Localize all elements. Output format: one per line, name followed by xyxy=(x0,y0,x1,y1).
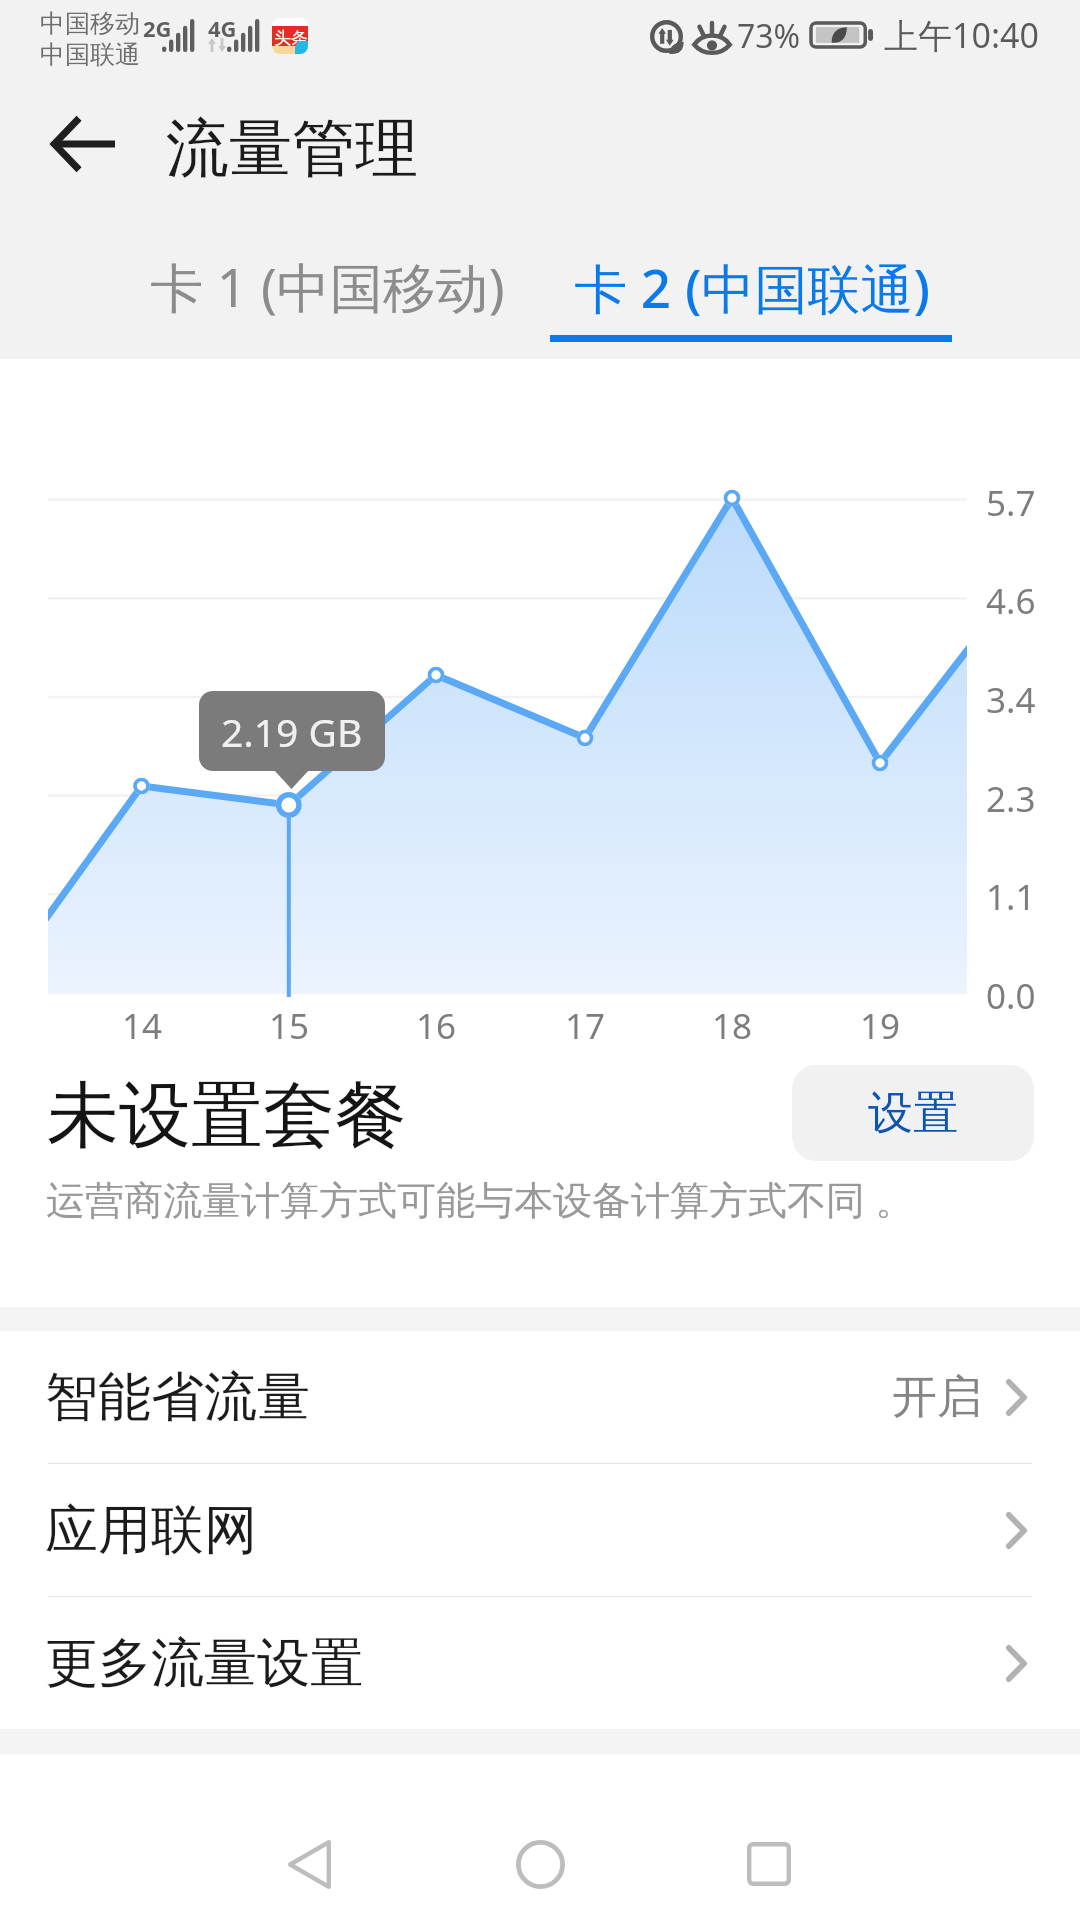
staticText: 4.6 xyxy=(986,577,1036,625)
staticText: 智能省流量 xyxy=(45,1364,310,1431)
staticText: 卡 2 (中国联通) xyxy=(574,251,930,323)
button[interactable]: 应用联网 xyxy=(0,1464,1080,1596)
staticText: 15 xyxy=(269,1002,310,1050)
button[interactable]: 卡 1 (中国移动) xyxy=(60,250,595,370)
button[interactable]: 智能省流量 xyxy=(0,1331,1080,1463)
staticText: 设置 xyxy=(868,1085,958,1142)
staticText: 中国移动 xyxy=(40,8,140,39)
button[interactable]: 更多流量设置 xyxy=(0,1597,1080,1729)
staticText: 1.1 xyxy=(986,873,1036,921)
staticText: 流量管理 xyxy=(166,109,418,188)
button[interactable]: 设置 xyxy=(792,1065,1034,1161)
staticText: 开启 xyxy=(892,1369,982,1426)
button[interactable]: 卡 2 (中国联通) xyxy=(484,251,1019,371)
staticText: 17 xyxy=(565,1002,606,1050)
staticText: 卡 1 (中国移动) xyxy=(150,250,505,322)
staticText: 未设置套餐 xyxy=(47,1071,407,1162)
staticText: 2.3 xyxy=(986,775,1036,823)
staticText: 3.4 xyxy=(986,676,1036,724)
button[interactable]: Home xyxy=(480,1815,600,1913)
staticText: 运营商流量计算方式可能与本设备计算方式不同 。 xyxy=(46,1172,915,1225)
staticText: 5.7 xyxy=(986,479,1036,527)
staticText: 头条 xyxy=(274,28,308,49)
staticText: 2.19 GB xyxy=(221,705,363,758)
staticText: 73% xyxy=(737,14,801,58)
staticText: 上午10:40 xyxy=(884,12,1039,58)
staticText: 2G xyxy=(143,13,172,43)
staticText: 16 xyxy=(416,1002,457,1050)
button[interactable]: Back xyxy=(249,1815,369,1913)
button[interactable]: Recents xyxy=(709,1815,829,1913)
staticText: 18 xyxy=(712,1002,753,1050)
staticText: 4G xyxy=(208,13,237,43)
staticText: 19 xyxy=(860,1002,901,1050)
staticText: 更多流量设置 xyxy=(45,1630,363,1697)
staticText: 14 xyxy=(122,1002,163,1050)
staticText: 应用联网 xyxy=(45,1497,257,1564)
staticText: 0.0 xyxy=(986,972,1036,1020)
staticText: 中国联通 xyxy=(40,39,140,70)
button[interactable]: Back xyxy=(28,88,140,200)
